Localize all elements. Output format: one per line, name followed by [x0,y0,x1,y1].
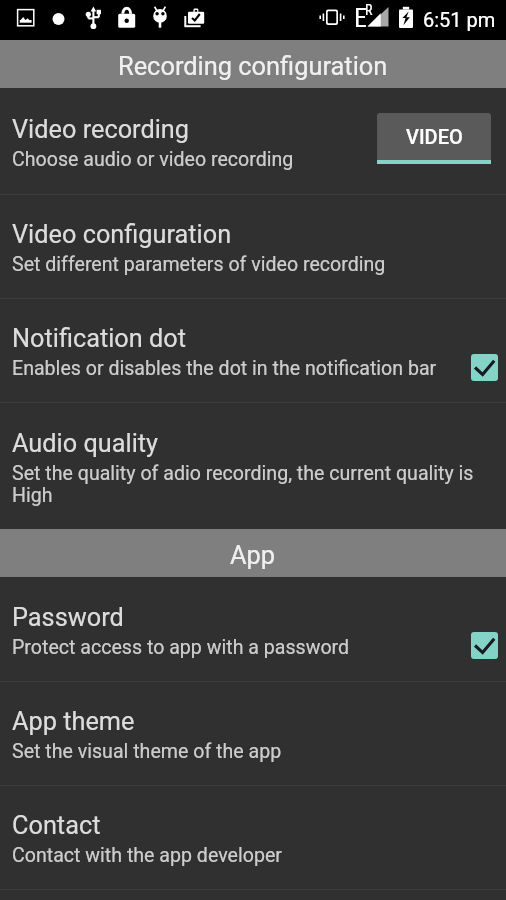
button[interactable]: Contact [0,786,506,889]
staticText: Enables or disables the dot in the notif… [12,357,437,380]
staticText: Video recording [12,115,189,145]
staticText: Set the quality of adio recording, the c… [12,462,498,507]
button[interactable]: App theme [0,682,506,785]
staticText: Contact with the app developer [12,844,282,867]
staticText: VIDEO [406,125,463,148]
button[interactable]: Video recording [0,88,506,194]
staticText: E [354,3,367,33]
staticText: Protect access to app with a password [12,636,350,659]
staticText: App theme [12,707,135,737]
staticText: Notification dot [12,324,186,354]
staticText: Password [12,603,124,633]
button[interactable]: Audio quality [0,403,506,529]
staticText: App [230,540,276,570]
staticText: Choose audio or video recording [12,148,294,171]
button[interactable]: VIDEO [377,113,491,164]
button[interactable]: Video configuration [0,195,506,298]
staticText: Audio quality [12,429,159,459]
button[interactable]: Password [0,577,506,681]
button[interactable]: Toggle setting [462,623,506,667]
staticText: Set different parameters of video record… [12,253,386,276]
staticText: Recording configuration [118,51,388,81]
staticText: 6:51 pm [423,8,496,31]
staticText: Contact [12,811,101,841]
staticText: Video configuration [12,220,232,250]
staticText: R [365,2,373,18]
staticText: Set the visual theme of the app [12,740,282,763]
button[interactable]: Toggle setting [462,345,506,389]
button[interactable]: Notification dot [0,299,506,402]
